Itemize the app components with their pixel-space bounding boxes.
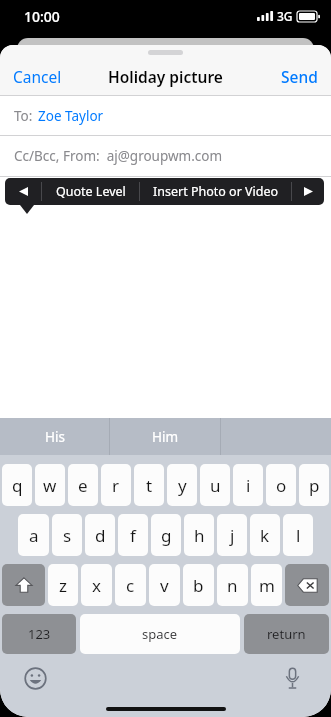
button[interactable]: e <box>68 464 98 506</box>
button[interactable]: z <box>48 564 78 606</box>
staticText: q <box>12 474 23 497</box>
staticText: w <box>43 474 57 497</box>
button[interactable]: Him <box>110 418 220 455</box>
button[interactable]: Dictation <box>277 663 307 693</box>
staticText: return <box>267 625 306 643</box>
staticText: n <box>227 574 238 597</box>
staticText: g <box>161 524 172 547</box>
staticText: b <box>193 574 204 597</box>
staticText: f <box>130 524 136 547</box>
staticText: d <box>95 524 106 547</box>
button[interactable]: y <box>167 464 197 506</box>
button[interactable]: Insert Photo or Video <box>140 178 291 205</box>
staticText: Zoe Taylor <box>38 107 104 125</box>
staticText: m <box>259 574 275 597</box>
staticText: e <box>78 474 88 497</box>
button[interactable]: u <box>200 464 230 506</box>
staticText: j <box>230 524 235 547</box>
staticText: Cancel <box>13 66 62 87</box>
staticText: Hi <box>14 190 28 208</box>
button[interactable]: v <box>149 564 180 606</box>
staticText: Him <box>152 428 179 446</box>
staticText: p <box>309 474 320 497</box>
button[interactable]: space <box>80 614 240 654</box>
button[interactable]: d <box>85 514 115 556</box>
button[interactable]: Previous <box>5 178 41 205</box>
staticText: v <box>160 574 169 597</box>
button[interactable]: q <box>2 464 32 506</box>
staticText: Holiday picture <box>108 66 223 87</box>
staticText: 3G <box>277 8 293 24</box>
staticText: o <box>276 474 287 497</box>
button[interactable]: Cancel <box>0 59 75 94</box>
button[interactable]: c <box>115 564 146 606</box>
button[interactable]: To: <box>0 96 331 135</box>
staticText: To: <box>14 107 33 125</box>
staticText: s <box>63 524 72 547</box>
button[interactable]: w <box>35 464 65 506</box>
staticText: r <box>112 474 120 497</box>
staticText: i <box>246 474 251 497</box>
staticText: u <box>210 474 221 497</box>
staticText: Quote Level <box>56 183 126 200</box>
button[interactable]: f <box>118 514 148 556</box>
button[interactable]: n <box>217 564 248 606</box>
button[interactable]: x <box>81 564 112 606</box>
button[interactable]: b <box>183 564 214 606</box>
button[interactable]: Emoji <box>20 663 50 693</box>
button[interactable]: Send <box>268 59 331 94</box>
staticText: y <box>178 474 187 497</box>
button[interactable]: o <box>266 464 296 506</box>
staticText: Insert Photo or Video <box>153 183 279 200</box>
button[interactable]: Shift <box>2 564 45 606</box>
staticText: h <box>194 524 205 547</box>
button[interactable]: l <box>283 514 313 556</box>
button[interactable]: r <box>101 464 131 506</box>
staticText: Cc/Bcc, From: aj@groupwm.com <box>14 147 223 165</box>
staticText: k <box>260 524 270 547</box>
button[interactable]: His <box>0 418 109 455</box>
staticText: l <box>296 524 301 547</box>
staticText: z <box>59 574 67 597</box>
button[interactable]: Cc/Bcc, From: aj@groupwm.com <box>0 136 331 176</box>
button[interactable]: h <box>184 514 214 556</box>
button[interactable]: m <box>251 564 282 606</box>
staticText: x <box>92 574 101 597</box>
staticText: a <box>29 524 39 547</box>
button[interactable]: t <box>134 464 164 506</box>
button[interactable]: Quote Level <box>42 178 139 205</box>
staticText: 123 <box>28 625 51 643</box>
button[interactable]: s <box>52 514 82 556</box>
staticText: t <box>146 474 153 497</box>
button[interactable]: Next <box>292 178 324 205</box>
button[interactable]: p <box>299 464 329 506</box>
staticText: 10:00 <box>24 7 60 26</box>
button[interactable]: g <box>151 514 181 556</box>
button[interactable]: k <box>250 514 280 556</box>
button[interactable]: 123 <box>2 614 76 654</box>
button[interactable]: j <box>217 514 247 556</box>
staticText: Send <box>281 66 318 87</box>
button[interactable]: Backspace <box>285 564 329 606</box>
button[interactable]: return <box>244 614 329 654</box>
button[interactable]: i <box>233 464 263 506</box>
staticText: space <box>142 625 178 643</box>
staticText: His <box>45 428 65 446</box>
staticText: c <box>126 574 135 597</box>
button[interactable]: a <box>18 514 49 556</box>
